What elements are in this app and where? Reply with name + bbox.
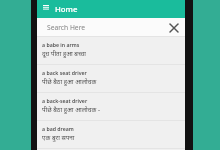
staticText: a back seat driver: [42, 69, 87, 76]
staticText: पीछे बैठा हुआ आलोचक: [42, 77, 97, 86]
button[interactable]: a back-seat driver: [37, 93, 185, 120]
button[interactable]: a babe in arms: [37, 37, 185, 64]
staticText: एक बुरा सपना: [42, 133, 75, 142]
staticText: a back-seat driver: [42, 97, 88, 104]
staticText: a babe in arms: [42, 41, 80, 48]
staticText: दूध पीता हुआ बच्चा: [42, 49, 86, 58]
staticText: पीछे बैठा हुआ आलोचक -: [42, 105, 101, 114]
staticText: Search Here: [47, 23, 86, 32]
button[interactable]: Open navigation menu: [40, 2, 51, 13]
button[interactable]: a bad dream: [37, 121, 185, 148]
button[interactable]: a back seat driver: [37, 65, 185, 92]
staticText: Home: [55, 4, 78, 15]
staticText: a bad dream: [42, 125, 74, 132]
button[interactable]: Clear search: [167, 21, 181, 35]
